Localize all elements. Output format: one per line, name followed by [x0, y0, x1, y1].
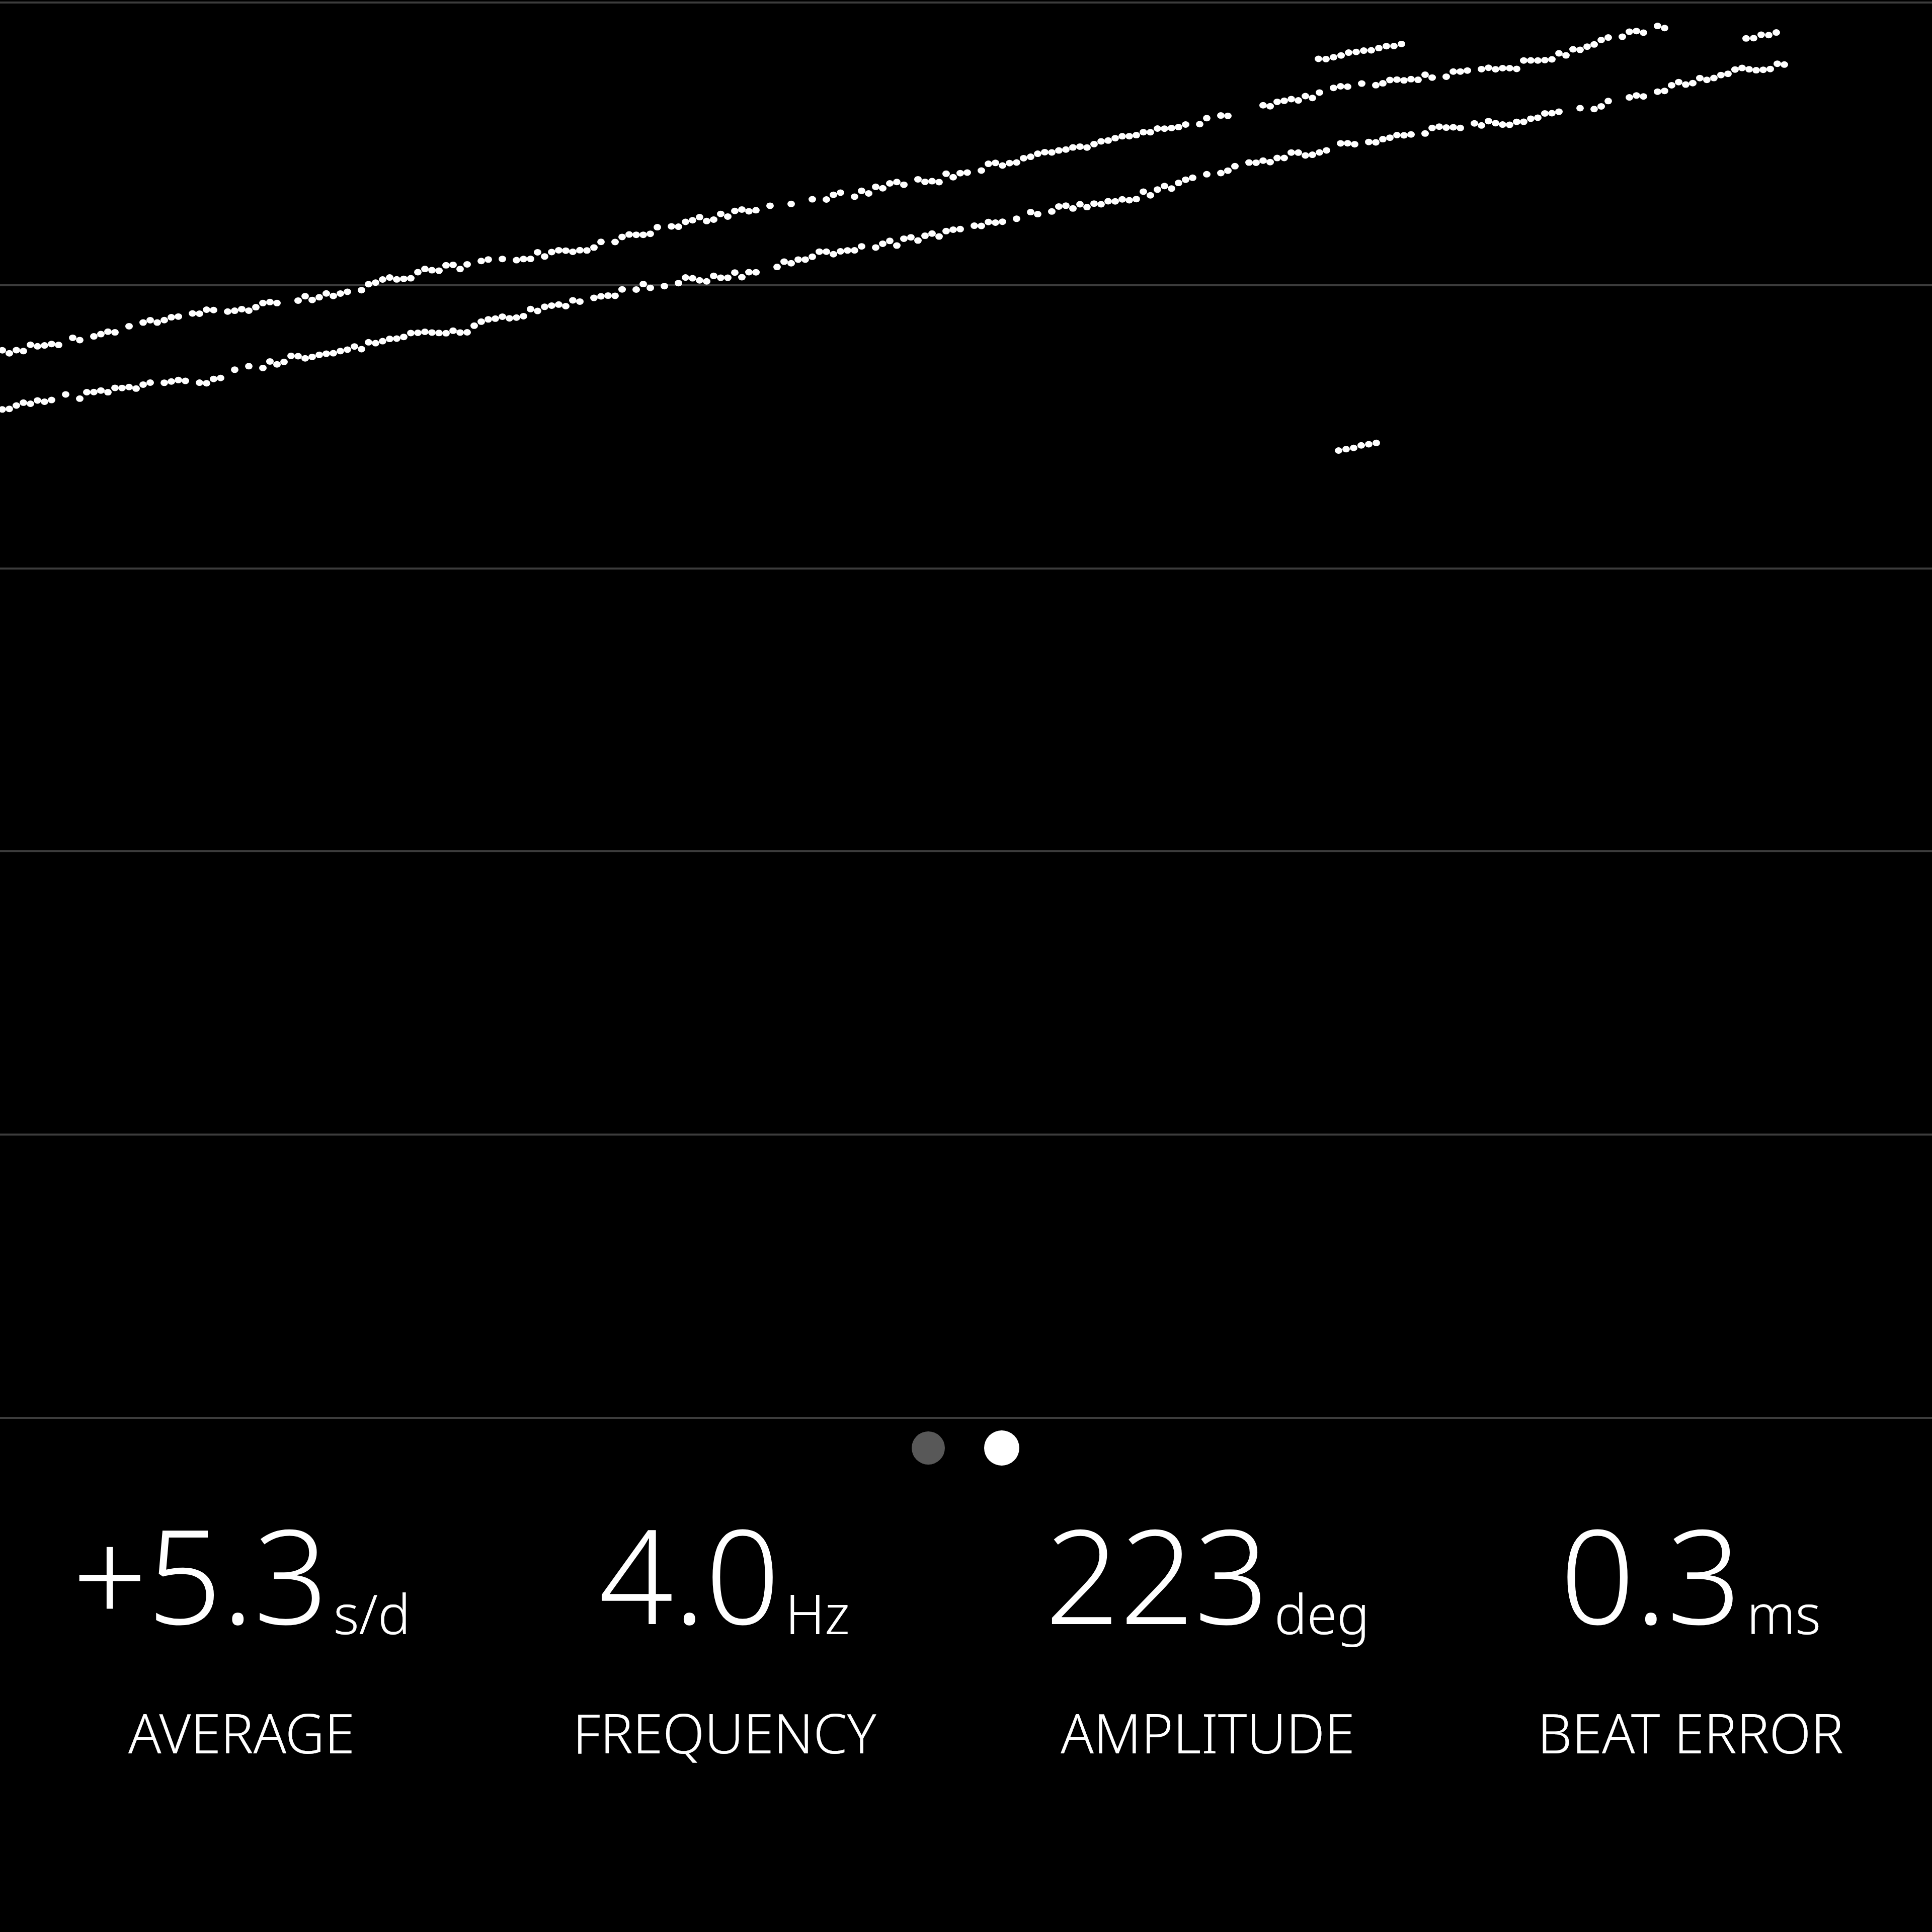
button[interactable]: Page 2, selected [984, 1430, 1019, 1466]
staticText: AMPLITUDE [1061, 1696, 1355, 1769]
staticText: +5.3 [72, 1484, 329, 1662]
staticText: FREQUENCY [573, 1696, 876, 1769]
staticText: AVERAGE [128, 1696, 355, 1769]
button[interactable]: 4.0 [483, 1484, 966, 1806]
staticText: 4.0 [599, 1484, 780, 1662]
button[interactable]: 0.3 [1449, 1484, 1932, 1806]
staticText: ms [1747, 1576, 1821, 1650]
staticText: BEAT ERROR [1538, 1696, 1843, 1769]
staticText: 0.3 [1560, 1484, 1742, 1662]
staticText: Hz [785, 1576, 850, 1650]
button[interactable]: Page 1 [911, 1430, 946, 1466]
button[interactable]: 223 [966, 1484, 1449, 1806]
staticText: deg [1274, 1576, 1370, 1650]
staticText: 223 [1045, 1484, 1269, 1662]
staticText: s/d [334, 1576, 411, 1650]
button[interactable]: +5.3 [0, 1484, 483, 1806]
